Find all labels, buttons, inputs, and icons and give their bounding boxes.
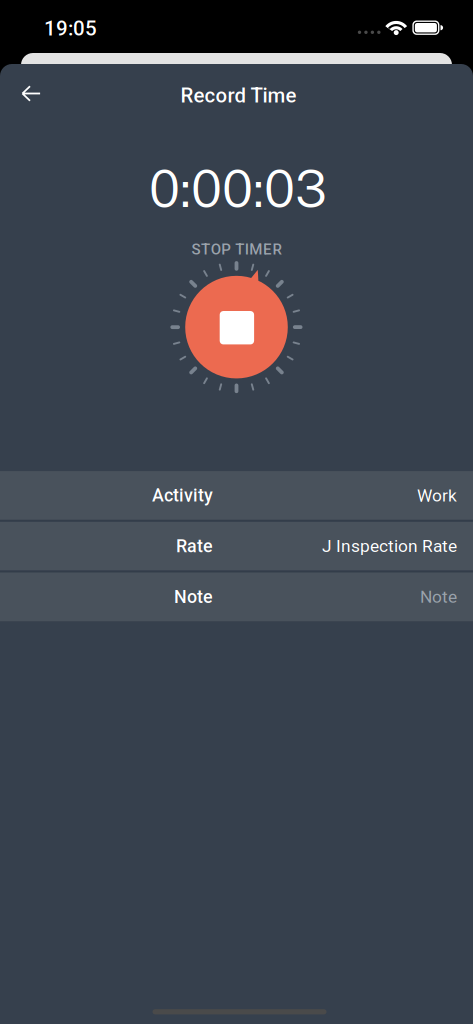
staticText: Work [417,485,457,506]
button[interactable]: Rate [0,522,473,570]
staticText: STOP TIMER [191,240,281,258]
button[interactable]: Note [0,572,473,621]
staticText: J Inspection Rate [322,536,457,556]
staticText: Activity [152,485,213,506]
staticText: 19:05 [44,16,97,41]
button[interactable]: Back [0,70,58,117]
button[interactable]: Activity [0,471,473,520]
staticText: Record Time [180,83,296,107]
staticText: 0:00:03 [149,158,327,218]
staticText: Note [174,586,213,607]
staticText: Note [420,587,457,607]
staticText: Rate [176,536,213,557]
button[interactable]: Stop timer [170,261,303,394]
